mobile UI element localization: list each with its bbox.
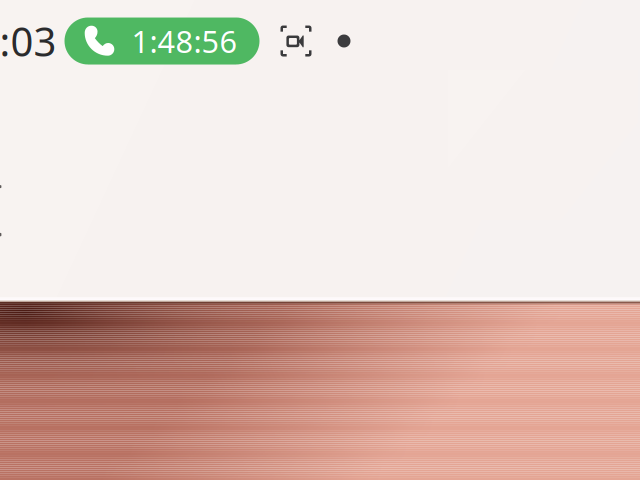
staticText: :03	[0, 14, 56, 67]
staticText: 1:48:56	[131, 21, 237, 61]
button[interactable]: 1:48:56	[64, 17, 259, 64]
button[interactable]: Screen Mirroring	[280, 25, 311, 56]
